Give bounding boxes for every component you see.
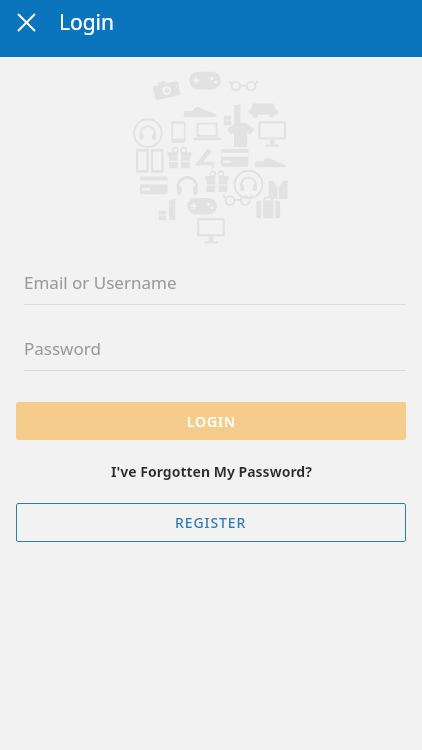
staticText: Password [24,337,101,360]
button[interactable]: Email or Username [24,271,406,305]
button[interactable]: Close [4,0,48,44]
staticText: REGISTER [175,513,247,532]
button[interactable]: REGISTER [16,503,406,542]
button[interactable]: LOGIN [16,402,406,440]
staticText: LOGIN [187,412,236,431]
button[interactable]: Password [24,337,406,371]
staticText: Login [59,8,115,37]
button[interactable]: I've Forgotten My Password? [0,462,422,481]
staticText: I've Forgotten My Password? [111,462,312,481]
staticText: Email or Username [24,271,177,294]
